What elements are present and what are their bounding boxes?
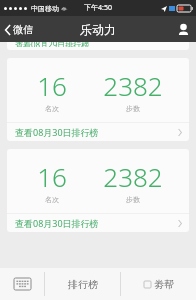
staticText: 查看08月30日排行榜 (15, 126, 99, 138)
staticText: 排行榜 (68, 278, 98, 291)
staticText: 名次 (45, 104, 59, 113)
staticText: 劵帮 (154, 278, 174, 291)
button[interactable]: 劵帮 (121, 268, 196, 300)
button[interactable]: 微信 (0, 19, 39, 40)
button[interactable]: Profile (171, 18, 196, 40)
staticText: 2382 (103, 159, 163, 194)
button[interactable]: 排行榜 (45, 268, 120, 300)
staticText: 下午4:50 (84, 3, 112, 13)
staticText: 步数 (126, 104, 140, 113)
staticText: 步数 (126, 195, 140, 204)
staticText: 名次 (45, 195, 59, 204)
button[interactable]: 查看08月29日排行榜 (7, 42, 189, 50)
staticText: 16 (37, 159, 67, 194)
staticText: 查看08月30日排行榜 (15, 217, 99, 229)
button[interactable]: 查看08月30日排行榜 (7, 214, 189, 232)
staticText: 16 (37, 68, 67, 103)
staticText: 中国移动 (31, 4, 59, 13)
button[interactable]: 查看08月30日排行榜 (7, 123, 189, 141)
staticText: 2382 (103, 68, 163, 103)
staticText: 查看08月29日排行榜 (15, 42, 90, 47)
button[interactable]: Keyboard (0, 268, 44, 300)
staticText: 乐动力 (80, 22, 116, 37)
staticText: 微信 (13, 23, 33, 36)
